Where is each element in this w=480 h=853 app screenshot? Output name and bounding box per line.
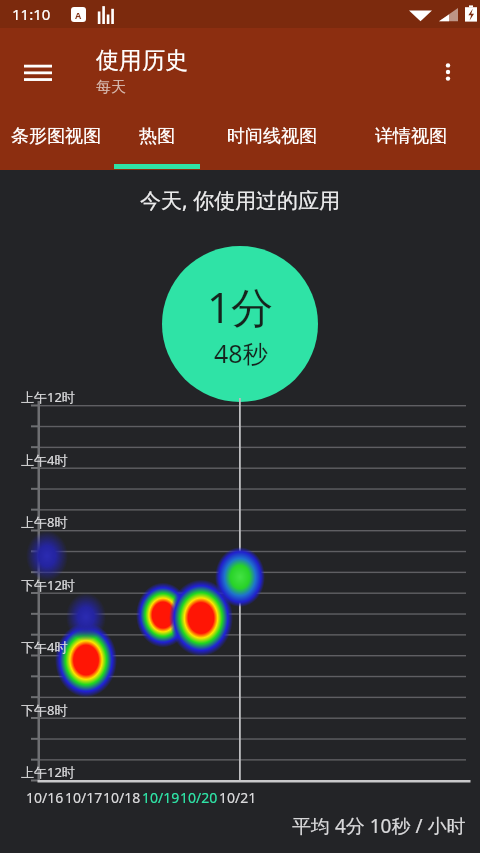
button[interactable]: 条形图视图	[0, 116, 112, 170]
staticText: 下午8时	[21, 701, 68, 719]
staticText: 上午4时	[21, 451, 68, 469]
staticText: 条形图视图	[11, 125, 101, 148]
staticText: 热图	[139, 125, 175, 148]
staticText: 10/20	[180, 788, 218, 807]
staticText: 10/16	[26, 788, 64, 807]
staticText: A	[75, 9, 82, 21]
button[interactable]: 详情视图	[342, 116, 480, 170]
staticText: 上午12时	[21, 388, 75, 406]
staticText: 上午8时	[21, 513, 68, 531]
staticText: 详情视图	[375, 125, 447, 148]
staticText: 使用历史	[96, 46, 188, 75]
staticText: 平均 4分 10秒 / 小时	[292, 813, 466, 839]
staticText: 48秒	[214, 336, 268, 370]
staticText: 10/21	[219, 788, 257, 807]
staticText: 时间线视图	[227, 125, 317, 148]
button[interactable]: 时间线视图	[202, 116, 342, 170]
button[interactable]: 热图	[112, 116, 202, 170]
staticText: 每天	[96, 78, 126, 97]
button[interactable]: Open navigation drawer	[11, 45, 65, 99]
button[interactable]: More options	[424, 48, 472, 96]
staticText: 今天, 你使用过的应用	[140, 186, 341, 215]
staticText: 10/18	[103, 788, 141, 807]
staticText: 10/19	[142, 788, 180, 807]
staticText: 上午12时	[21, 763, 75, 781]
staticText: 1分	[207, 278, 274, 335]
staticText: 11:10	[12, 4, 51, 24]
staticText: 下午12时	[21, 576, 75, 594]
staticText: 下午4时	[21, 638, 68, 656]
button[interactable]: 1分	[162, 246, 318, 402]
staticText: 10/17	[65, 788, 103, 807]
